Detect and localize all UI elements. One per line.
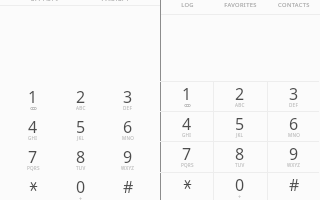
staticText: 9	[123, 146, 133, 163]
staticText: MNO	[288, 132, 300, 138]
button[interactable]: Dial 4	[9, 114, 57, 144]
staticText: PQRS	[181, 162, 194, 168]
button[interactable]: Dial 8	[213, 141, 267, 171]
button[interactable]: Dial #	[104, 174, 152, 200]
staticText: TUV	[235, 162, 245, 168]
staticText: ABC	[235, 102, 245, 108]
button[interactable]: Dial 5	[57, 114, 105, 144]
staticText: 3	[123, 86, 133, 103]
staticText: DEF	[123, 105, 133, 111]
staticText: 0	[235, 174, 245, 191]
staticText: WXYZ	[287, 162, 301, 168]
staticText: +	[238, 193, 242, 199]
staticText: 4	[28, 116, 38, 133]
staticText: +	[79, 195, 83, 200]
button[interactable]: Dial 9	[267, 141, 320, 171]
button[interactable]: CONTACTS	[267, 0, 320, 9]
staticText: 2	[235, 83, 245, 100]
staticText: 4	[182, 113, 192, 130]
staticText: JKL	[236, 132, 244, 138]
button[interactable]: Dial 7	[160, 141, 214, 171]
staticText: 8	[76, 146, 86, 163]
staticText: 1	[28, 86, 38, 103]
staticText: 7	[28, 146, 38, 163]
staticText: RECENTS	[31, 0, 58, 1]
staticText: 5	[235, 113, 245, 130]
button[interactable]: Dial 2	[213, 81, 267, 111]
button[interactable]: Dial 4	[160, 111, 214, 141]
staticText: JKL	[77, 135, 85, 141]
button[interactable]: RECENTS	[31, 0, 58, 1]
staticText: 7	[182, 143, 192, 160]
staticText: 2	[76, 86, 86, 103]
button[interactable]: LOG	[161, 0, 214, 9]
staticText: FAVORITES	[224, 1, 257, 9]
staticText: 6	[123, 116, 133, 133]
button[interactable]: Dial 0	[213, 172, 267, 200]
staticText: LOG	[181, 1, 194, 9]
button[interactable]: Dial *	[9, 174, 57, 200]
staticText: MNO	[122, 135, 134, 141]
staticText: 1	[182, 83, 192, 100]
button[interactable]: Dial *	[160, 172, 214, 200]
button[interactable]: Dial 0	[57, 174, 105, 200]
staticText: ABC	[76, 105, 86, 111]
button[interactable]: Dial 9	[104, 144, 152, 174]
button[interactable]: Dial 3	[267, 81, 320, 111]
staticText: GHI	[28, 135, 38, 141]
staticText: CONTACTS	[278, 1, 310, 9]
button[interactable]: Dial #	[267, 172, 320, 200]
staticText: #	[289, 174, 300, 191]
button[interactable]: Dial 6	[267, 111, 320, 141]
staticText: 0	[76, 176, 86, 193]
staticText: DEF	[289, 102, 299, 108]
staticText: GHI	[182, 132, 192, 138]
button[interactable]: FAVORITES	[214, 0, 267, 9]
staticText: PQRS	[27, 165, 40, 171]
staticText: 9	[289, 143, 299, 160]
staticText: 6	[289, 113, 299, 130]
staticText: 5	[76, 116, 86, 133]
button[interactable]: Dial 5	[213, 111, 267, 141]
button[interactable]: Dial 3	[104, 84, 152, 114]
staticText: CONTACTS	[101, 0, 130, 1]
button[interactable]: Dial 1	[9, 84, 57, 114]
button[interactable]: Dial 8	[57, 144, 105, 174]
staticText: #	[123, 176, 134, 193]
staticText: 8	[235, 143, 245, 160]
button[interactable]: Dial 6	[104, 114, 152, 144]
button[interactable]: Dial 2	[57, 84, 105, 114]
button[interactable]: CONTACTS	[101, 0, 130, 1]
staticText: 3	[289, 83, 299, 100]
button[interactable]: Dial 1	[160, 81, 214, 111]
staticText: TUV	[76, 165, 86, 171]
button[interactable]: Dial 7	[9, 144, 57, 174]
staticText: WXYZ	[121, 165, 135, 171]
